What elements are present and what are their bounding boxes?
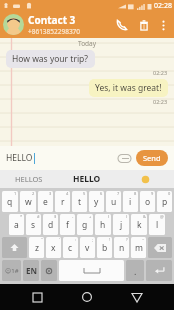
- button[interactable]: 9: [140, 191, 155, 212]
- staticText: z: [35, 242, 39, 254]
- staticText: HELLO: [73, 173, 101, 185]
- staticText: u: [111, 196, 117, 208]
- button[interactable]: How was your trip?: [6, 50, 95, 68]
- button[interactable]: 8: [123, 191, 138, 212]
- button[interactable]: 5: [72, 191, 87, 212]
- staticText: 8: [134, 191, 137, 196]
- staticText: HELLO: [6, 152, 33, 164]
- button[interactable]: Attach: [115, 149, 133, 167]
- button[interactable]: -: [60, 214, 75, 235]
- staticText: ~: [142, 237, 145, 242]
- staticText: +: [89, 214, 92, 219]
- button[interactable]: Language: [23, 260, 39, 281]
- button[interactable]: 6: [89, 191, 104, 212]
- staticText: b: [102, 242, 108, 254]
- staticText: l: [156, 219, 159, 231]
- button[interactable]: Shift: [2, 237, 27, 258]
- staticText: a: [14, 219, 19, 231]
- staticText: d: [48, 219, 54, 231]
- staticText: &: [143, 214, 146, 219]
- button[interactable]: 4: [55, 191, 70, 212]
- staticText: f: [66, 219, 69, 231]
- button[interactable]: ~: [131, 237, 146, 258]
- button[interactable]: Contact 3: [28, 13, 111, 36]
- button[interactable]: 1: [2, 191, 18, 212]
- button[interactable]: 0: [157, 191, 172, 212]
- staticText: ": [41, 237, 43, 242]
- staticText: 0: [168, 191, 171, 196]
- staticText: r: [61, 196, 65, 208]
- button[interactable]: Send: [136, 150, 168, 166]
- button[interactable]: !: [97, 237, 112, 258]
- staticText: ☺1#: [5, 267, 19, 275]
- staticText: v: [85, 242, 90, 254]
- staticText: q: [7, 196, 13, 208]
- button[interactable]: (: [95, 214, 111, 235]
- button[interactable]: @: [149, 214, 165, 235]
- button[interactable]: :: [63, 237, 78, 258]
- button[interactable]: HELLO: [6, 152, 115, 164]
- staticText: Send: [143, 153, 161, 163]
- button[interactable]: #: [26, 214, 41, 235]
- button[interactable]: Delete: [133, 14, 155, 36]
- button[interactable]: Symbols: [2, 260, 21, 281]
- button[interactable]: Space: [59, 260, 124, 281]
- button[interactable]: Call: [111, 14, 133, 36]
- staticText: o: [145, 196, 151, 208]
- staticText: 6: [100, 191, 103, 196]
- staticText: 5: [83, 191, 86, 196]
- button[interactable]: ?: [114, 237, 129, 258]
- button[interactable]: &: [131, 214, 147, 235]
- staticText: !: [109, 237, 111, 242]
- staticText: 9: [151, 191, 154, 196]
- button[interactable]: 7: [106, 191, 121, 212]
- staticText: x: [51, 242, 56, 254]
- staticText: 7: [117, 191, 120, 196]
- staticText: #: [37, 214, 40, 219]
- staticText: 3: [49, 191, 52, 196]
- staticText: @: [160, 214, 164, 219]
- button[interactable]: HELLOS: [0, 170, 58, 188]
- button[interactable]: HELLO: [58, 170, 116, 188]
- staticText: Yes, it was great!: [95, 82, 162, 94]
- button[interactable]: ": [29, 237, 44, 258]
- button[interactable]: Back: [124, 284, 150, 310]
- button[interactable]: Enter: [146, 260, 172, 281]
- staticText: c: [68, 242, 73, 254]
- staticText: EN: [26, 265, 37, 276]
- staticText: y: [94, 196, 99, 208]
- button[interactable]: More options: [155, 17, 171, 33]
- staticText: +8613852298370: [28, 27, 81, 36]
- button[interactable]: Yes, it was great!: [89, 79, 168, 97]
- staticText: j: [120, 219, 123, 231]
- staticText: 02:23: [153, 98, 168, 105]
- button[interactable]: Recent apps: [24, 284, 50, 310]
- button[interactable]: Period: [126, 260, 144, 281]
- button[interactable]: ): [113, 214, 129, 235]
- button[interactable]: Backspace: [148, 237, 172, 258]
- staticText: t: [78, 196, 82, 208]
- button[interactable]: $: [43, 214, 58, 235]
- staticText: HELLOS: [15, 174, 43, 184]
- button[interactable]: 3: [38, 191, 53, 212]
- staticText: i: [129, 196, 132, 208]
- button[interactable]: +: [77, 214, 93, 235]
- staticText: ): [126, 214, 128, 219]
- button[interactable]: Emoji suggestion: [116, 170, 174, 188]
- staticText: 02:28: [154, 1, 172, 11]
- button[interactable]: ;: [80, 237, 95, 258]
- button[interactable]: *: [9, 214, 24, 235]
- button[interactable]: ': [46, 237, 61, 258]
- staticText: h: [100, 219, 106, 231]
- staticText: 2: [32, 191, 35, 196]
- staticText: How was your trip?: [12, 53, 89, 65]
- staticText: s: [31, 219, 36, 231]
- button[interactable]: Home: [74, 284, 100, 310]
- staticText: .: [134, 265, 137, 277]
- staticText: g: [82, 219, 88, 231]
- button[interactable]: Settings: [41, 260, 57, 281]
- button[interactable]: 2: [20, 191, 36, 212]
- staticText: ?: [126, 237, 128, 242]
- staticText: -: [72, 214, 74, 219]
- staticText: :: [75, 237, 77, 242]
